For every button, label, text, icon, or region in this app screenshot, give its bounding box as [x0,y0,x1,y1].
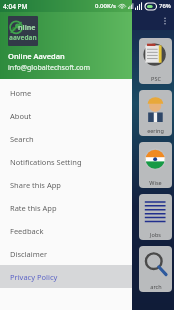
button[interactable]: Feedback [0,219,132,242]
staticText: 76% [159,2,171,10]
button[interactable]: More options [158,14,172,28]
staticText: Share this App [10,180,61,190]
staticText: PSC [151,75,161,82]
staticText: Search [10,134,34,144]
button[interactable]: Privacy Policy [0,265,132,288]
staticText: info@globaltechsoft.com [8,63,91,73]
staticText: arch [150,283,162,290]
staticText: eering [147,127,164,134]
button[interactable]: eering [139,90,172,136]
button[interactable]: Disclaimer [0,242,132,265]
button[interactable]: arch [139,246,172,292]
staticText: 4:04 PM [3,2,28,11]
staticText: Jobs [150,231,161,238]
staticText: Rate this App [10,203,57,213]
button[interactable]: PSC [139,38,172,84]
button[interactable]: Share this App [0,173,132,196]
staticText: Home [10,88,32,98]
staticText: About [10,111,32,121]
staticText: nline [18,23,36,33]
staticText: Feedback [10,226,44,236]
button[interactable]: Wise [139,142,172,188]
button[interactable]: Notifications Setting [0,150,132,173]
staticText: Online Aavedan [8,51,65,61]
staticText: Disclaimer [10,249,48,259]
button[interactable]: Rate this App [0,196,132,219]
staticText: 0.00K/s [95,2,116,10]
staticText: aavedan [9,33,37,42]
staticText: Notifications Setting [10,157,82,167]
staticText: Privacy Policy [10,272,58,282]
staticText: Wise [149,179,162,186]
button[interactable]: Jobs [139,194,172,240]
button[interactable]: Search [0,127,132,150]
button[interactable]: About [0,104,132,127]
button[interactable]: Home [0,81,132,104]
